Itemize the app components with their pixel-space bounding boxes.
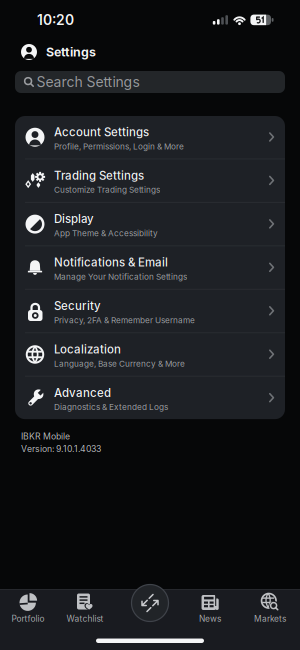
button[interactable]: Account — [21, 44, 37, 60]
staticText: Search Settings — [36, 73, 139, 90]
staticText: App Theme & Accessibility — [54, 228, 158, 238]
button[interactable]: Trading Settings — [15, 159, 285, 202]
staticText: IBKR Mobile — [21, 431, 70, 442]
staticText: Manage Your Notification Settings — [54, 272, 187, 282]
staticText: Language, Base Currency & More — [54, 359, 185, 369]
staticText: Watchlist — [66, 613, 103, 624]
button[interactable]: News — [180, 591, 240, 624]
staticText: Display — [54, 212, 94, 226]
staticText: Markets — [254, 613, 286, 624]
staticText: News — [199, 613, 221, 624]
staticText: Privacy, 2FA & Remember Username — [54, 315, 195, 325]
button[interactable]: Search Settings — [15, 71, 285, 93]
button[interactable]: Watchlist — [56, 591, 114, 624]
staticText: Account Settings — [54, 125, 149, 139]
staticText: Security — [54, 299, 101, 313]
staticText: Diagnostics & Extended Logs — [54, 402, 168, 412]
button[interactable]: Trade — [131, 584, 169, 622]
staticText: 10:20 — [37, 11, 74, 28]
staticText: Settings — [46, 44, 96, 59]
staticText: Profile, Permissions, Login & More — [54, 141, 184, 151]
staticText: Notifications & Email — [54, 255, 168, 269]
button[interactable]: Display — [15, 203, 285, 245]
staticText: Trading Settings — [54, 168, 144, 182]
button[interactable]: Security — [15, 290, 285, 332]
staticText: Version: 9.10.1.4033 — [21, 444, 101, 454]
button[interactable]: Markets — [240, 591, 300, 624]
staticText: Advanced — [54, 386, 111, 400]
staticText: Portfolio — [11, 613, 44, 624]
button[interactable]: Notifications & Email — [15, 246, 285, 289]
button[interactable]: Advanced — [15, 377, 285, 419]
button[interactable]: Portfolio — [0, 591, 56, 624]
staticText: Localization — [54, 342, 121, 356]
button[interactable]: Localization — [15, 333, 285, 376]
staticText: Customize Trading Settings — [54, 185, 160, 195]
button[interactable]: Account Settings — [15, 116, 285, 158]
